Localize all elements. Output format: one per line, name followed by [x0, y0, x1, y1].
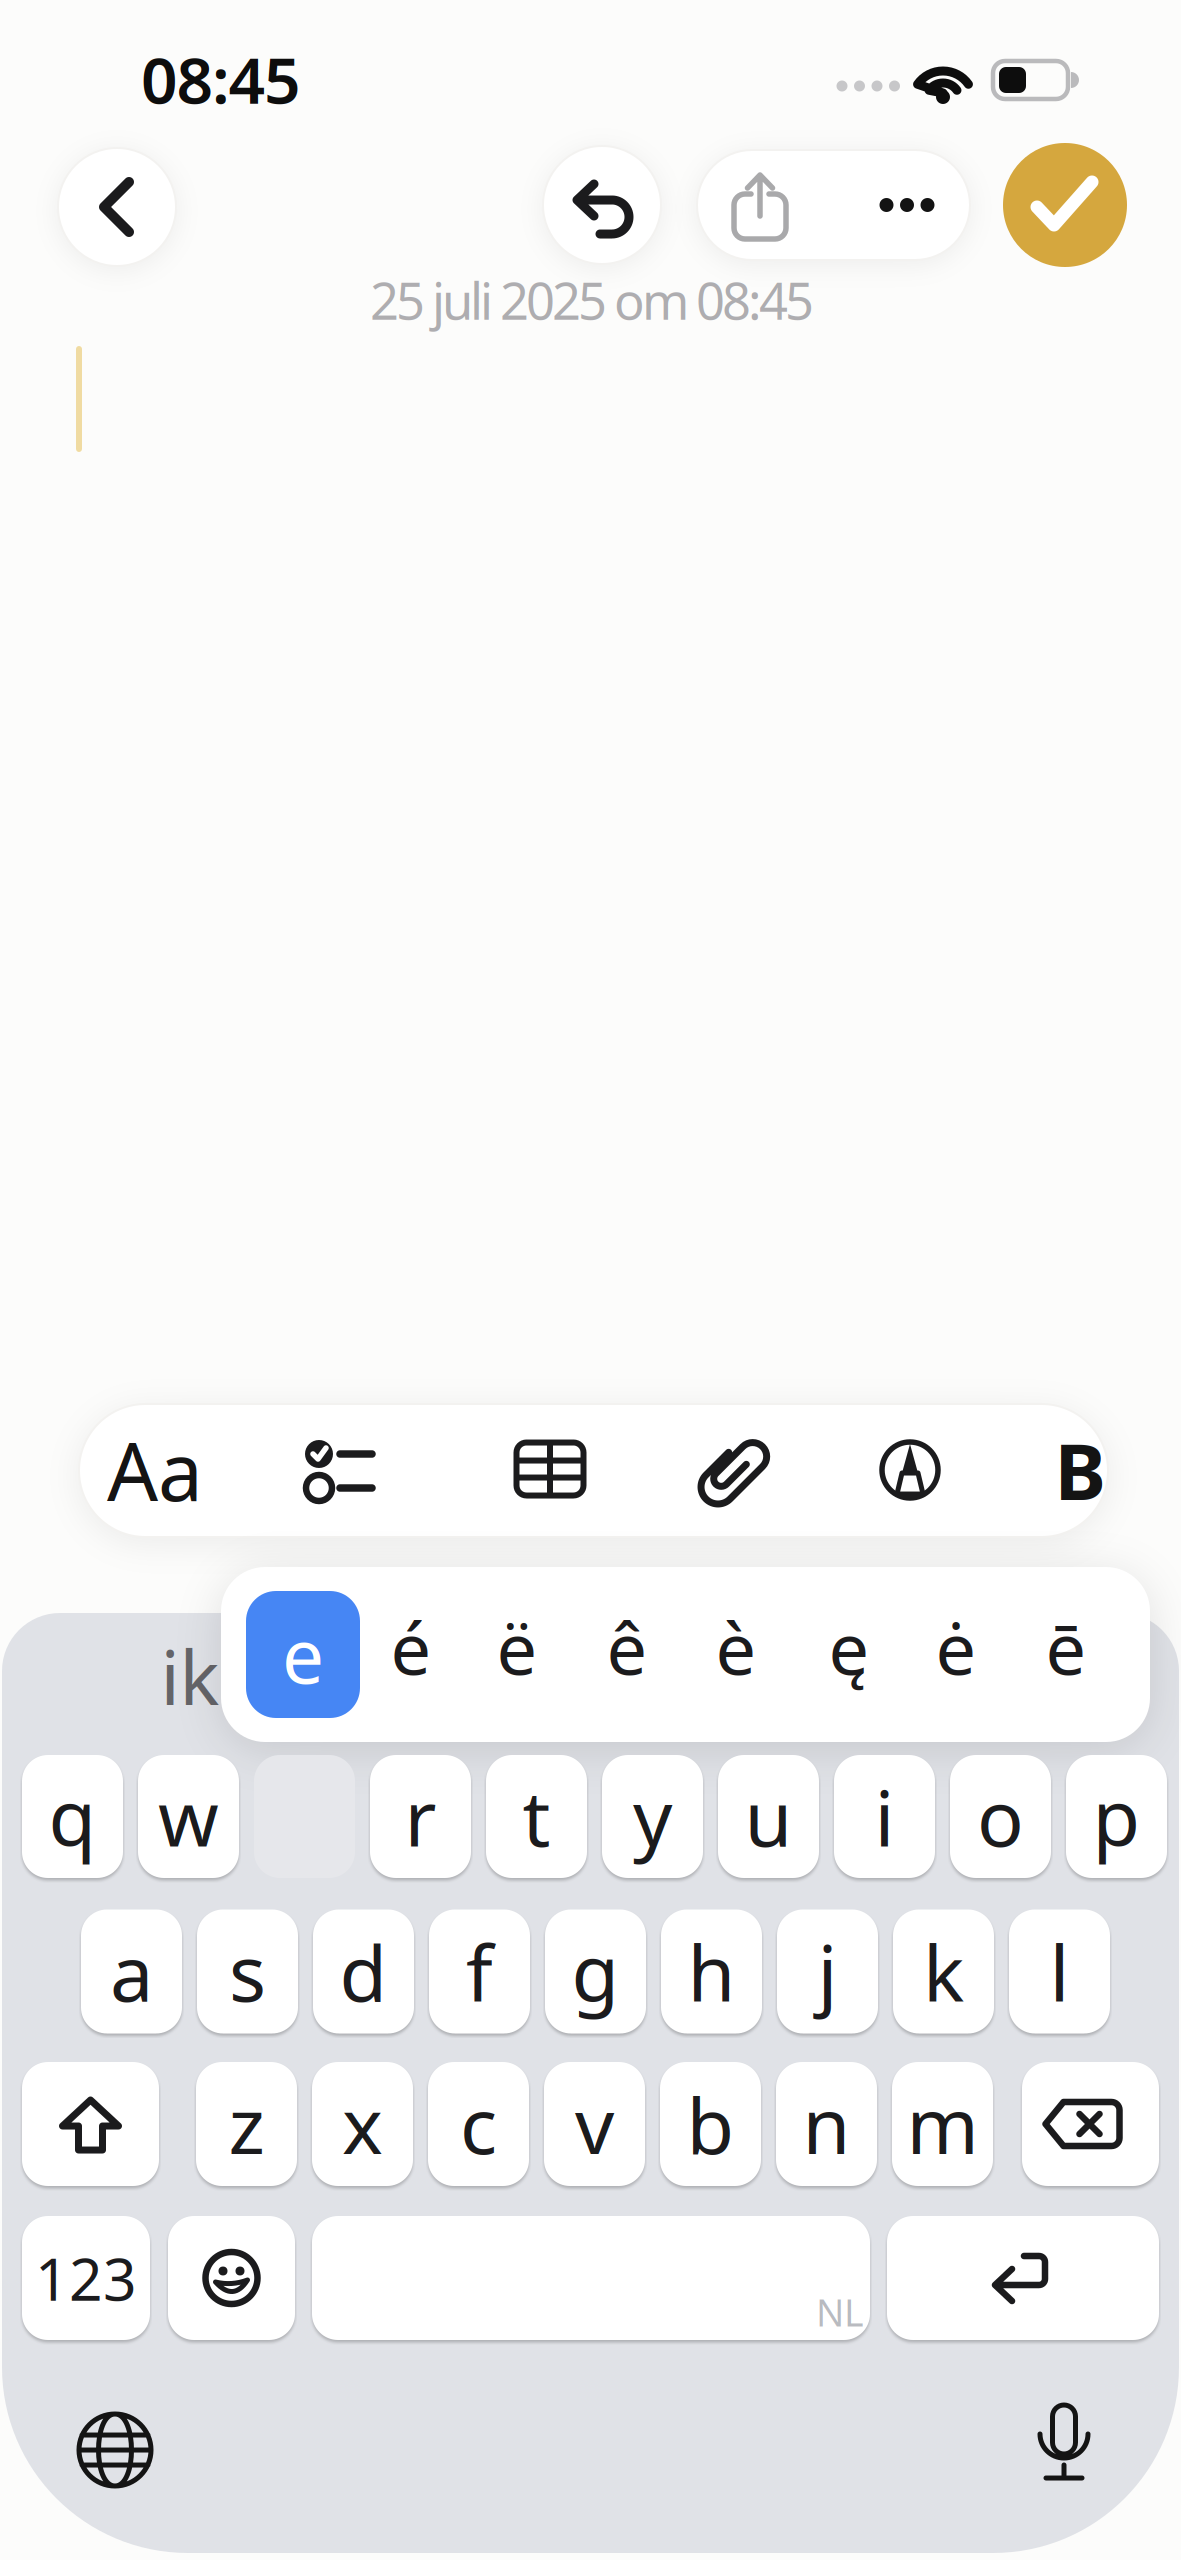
button[interactable]: Space	[312, 2216, 870, 2340]
staticText: w	[158, 1765, 219, 1868]
staticText: v	[575, 2073, 614, 2175]
staticText: e	[282, 1605, 324, 1704]
staticText: a	[110, 1920, 153, 2023]
staticText: 08:45	[141, 36, 301, 121]
button[interactable]: g	[545, 1909, 646, 2033]
button[interactable]: Done	[1003, 143, 1127, 267]
staticText: x	[342, 2073, 383, 2175]
button[interactable]: a	[81, 1909, 182, 2033]
staticText: p	[1092, 1765, 1140, 1868]
button[interactable]: Return	[887, 2216, 1159, 2340]
button[interactable]: Attach	[670, 1410, 800, 1530]
button[interactable]: Emoji	[168, 2216, 295, 2340]
staticText: u	[744, 1765, 792, 1868]
button[interactable]: q	[22, 1755, 123, 1878]
staticText: o	[977, 1765, 1024, 1868]
staticText: g	[571, 1920, 619, 2023]
button[interactable]: Next keyboard	[70, 2405, 160, 2495]
staticText: b	[686, 2073, 734, 2175]
button[interactable]: Delete	[1022, 2062, 1159, 2186]
button[interactable]: Undo	[543, 146, 661, 264]
button[interactable]: ë	[467, 1577, 567, 1717]
button[interactable]: m	[892, 2062, 993, 2186]
staticText: i	[874, 1765, 894, 1868]
staticText: y	[633, 1765, 672, 1868]
button[interactable]: w	[138, 1755, 239, 1878]
button[interactable]: x	[312, 2062, 413, 2186]
button[interactable]: More	[839, 150, 975, 260]
button[interactable]: Bold	[1040, 1410, 1120, 1530]
button[interactable]: c	[428, 2062, 529, 2186]
button[interactable]: Checklist	[287, 1410, 417, 1530]
staticText: f	[466, 1920, 493, 2023]
staticText: s	[229, 1920, 266, 2023]
button[interactable]: Table	[485, 1409, 615, 1529]
staticText: h	[687, 1920, 735, 2023]
staticText: m	[906, 2073, 978, 2175]
staticText: q	[48, 1765, 96, 1868]
button[interactable]: d	[313, 1909, 414, 2033]
button[interactable]: u	[718, 1755, 819, 1878]
button[interactable]: j	[777, 1909, 878, 2033]
button[interactable]: f	[429, 1909, 530, 2033]
staticText: è	[715, 1599, 756, 1695]
button[interactable]: s	[197, 1909, 298, 2033]
button[interactable]: i	[834, 1755, 935, 1878]
button[interactable]: Share	[697, 150, 833, 260]
button[interactable]: ę	[799, 1577, 899, 1717]
staticText: d	[339, 1920, 387, 2023]
button[interactable]: è	[686, 1577, 786, 1717]
staticText: ē	[1045, 1599, 1086, 1695]
button[interactable]: l	[1009, 1909, 1110, 2033]
button[interactable]: ė	[906, 1577, 1006, 1717]
button[interactable]: Shift	[22, 2062, 159, 2186]
staticText: l	[1049, 1920, 1069, 2023]
button[interactable]: 123	[22, 2216, 150, 2340]
button[interactable]: v	[544, 2062, 645, 2186]
button[interactable]: p	[1066, 1755, 1167, 1878]
button[interactable]: t	[486, 1755, 587, 1878]
button[interactable]: ê	[577, 1577, 677, 1717]
staticText: ę	[828, 1599, 869, 1695]
staticText: é	[390, 1599, 431, 1695]
button[interactable]: o	[950, 1755, 1051, 1878]
staticText: ė	[935, 1599, 976, 1695]
button[interactable]: h	[661, 1909, 762, 2033]
button[interactable]: Format	[80, 1410, 230, 1530]
staticText: c	[460, 2073, 497, 2175]
button[interactable]: b	[660, 2062, 761, 2186]
staticText: 123	[35, 2239, 137, 2317]
button[interactable]: ē	[1016, 1577, 1116, 1717]
staticText: r	[404, 1765, 436, 1868]
button[interactable]: Back	[58, 148, 176, 266]
staticText: NL	[816, 2287, 864, 2337]
button[interactable]: Markup	[845, 1410, 975, 1530]
staticText: n	[802, 2073, 850, 2175]
staticText: t	[522, 1765, 550, 1868]
button[interactable]: n	[776, 2062, 877, 2186]
staticText: k	[923, 1920, 964, 2023]
staticText: j	[817, 1920, 837, 2023]
button[interactable]: é	[361, 1577, 461, 1717]
button[interactable]: e	[246, 1591, 360, 1718]
staticText: B	[1054, 1419, 1105, 1521]
button[interactable]: Dictate	[1019, 2396, 1109, 2496]
button[interactable]: k	[893, 1909, 994, 2033]
button[interactable]: r	[370, 1755, 471, 1878]
button[interactable]: z	[196, 2062, 297, 2186]
staticText: ë	[496, 1599, 537, 1695]
staticText: Aa	[107, 1417, 203, 1523]
button[interactable]: y	[602, 1755, 703, 1878]
staticText: 25 juli 2025 om 08:45	[370, 266, 814, 334]
staticText: ê	[606, 1599, 647, 1695]
staticText: z	[228, 2073, 264, 2175]
staticText: ik	[160, 1626, 219, 1726]
